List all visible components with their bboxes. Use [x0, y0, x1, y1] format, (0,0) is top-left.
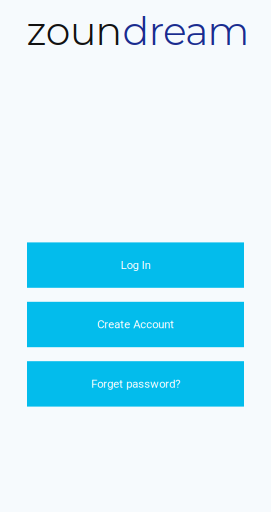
staticText: Log In — [120, 258, 150, 272]
staticText: Forget password? — [91, 377, 180, 391]
button[interactable]: Log In — [27, 242, 244, 288]
button[interactable]: Forget password? — [27, 361, 244, 407]
staticText: Create Account — [97, 318, 174, 331]
staticText: dream — [122, 7, 250, 55]
button[interactable]: Create Account — [27, 302, 244, 347]
staticText: zoun — [26, 7, 122, 55]
